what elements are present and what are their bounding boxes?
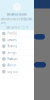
staticText: Sharing <box>7 44 17 48</box>
staticText: Desmos Team <box>7 13 27 16</box>
staticText: carlosdrums.onsfr@gmail.com <box>0 17 33 24</box>
staticText: Devices <box>7 38 16 42</box>
button[interactable]: Sharing <box>0 43 34 49</box>
button[interactable]: About <box>0 62 34 68</box>
staticText: Last synced 12 m <box>6 26 28 29</box>
staticText: Storage <box>7 51 17 54</box>
button[interactable]: Devices <box>0 37 34 43</box>
button[interactable]: Backups <box>0 56 34 62</box>
staticText: About <box>7 63 16 67</box>
button[interactable]: Log out <box>0 69 34 75</box>
button[interactable]: Storage <box>0 49 34 55</box>
staticText: Profile <box>7 32 17 35</box>
staticText: Backups <box>7 57 17 61</box>
button[interactable]: Profile <box>0 30 34 36</box>
staticText: Log out <box>7 70 18 73</box>
